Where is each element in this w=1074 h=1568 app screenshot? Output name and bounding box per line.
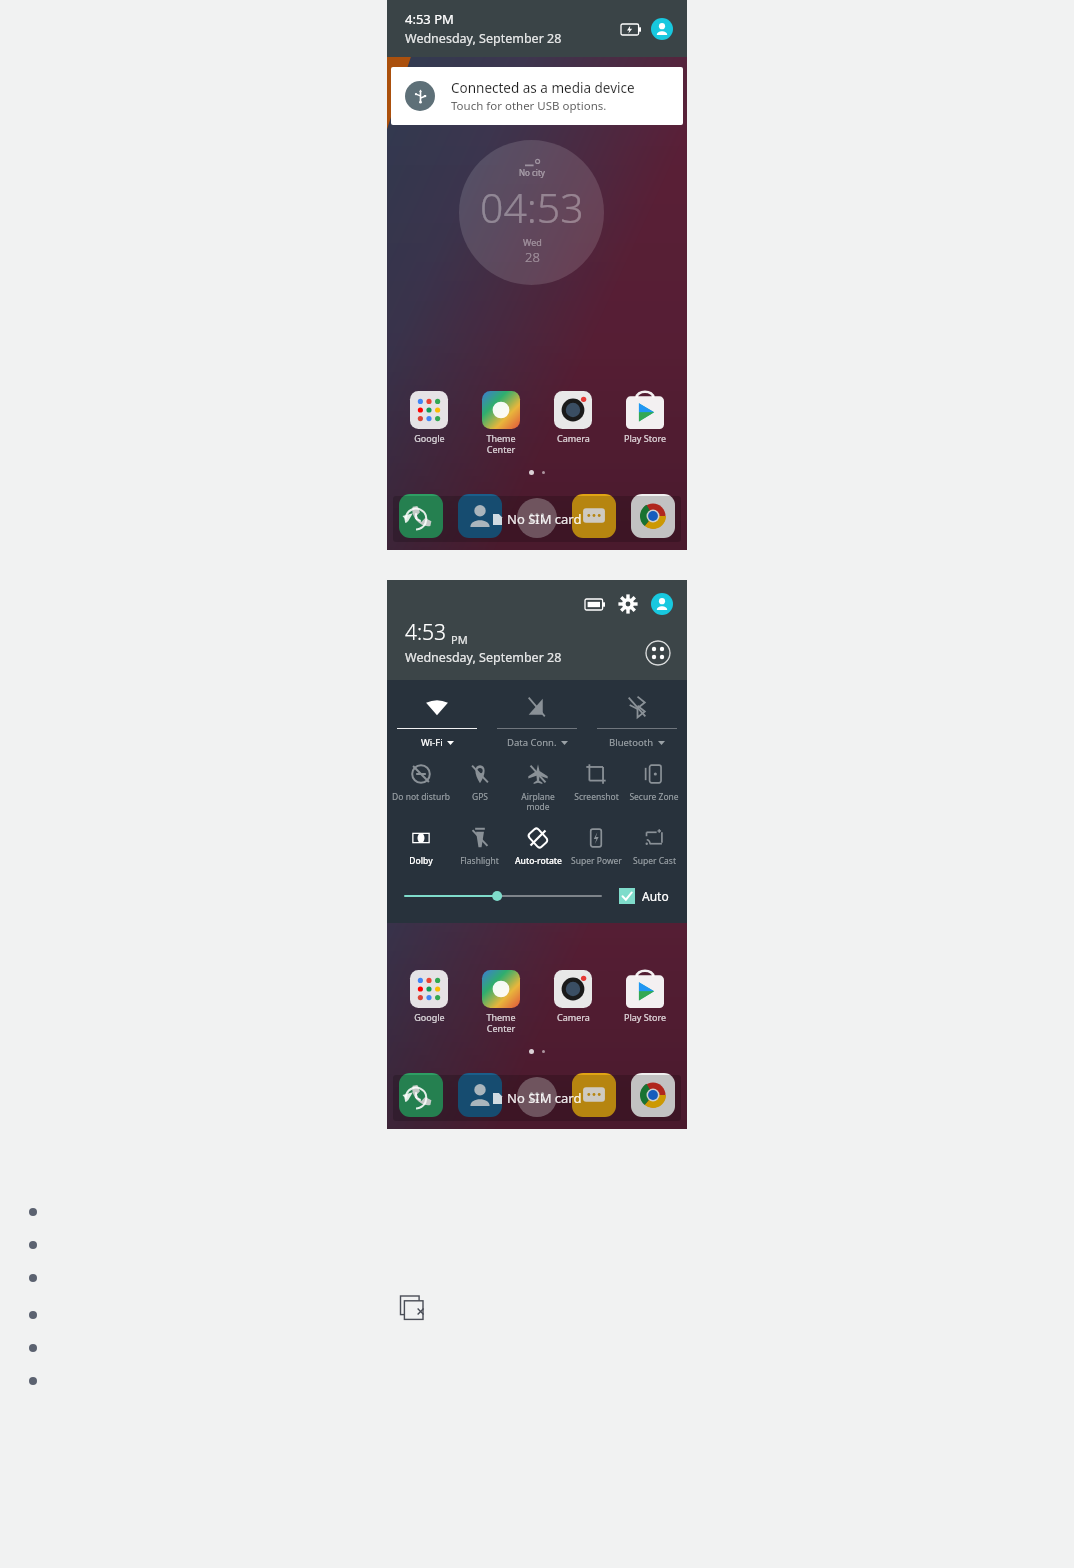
button[interactable]: Brightness <box>405 886 601 906</box>
button[interactable]: All apps <box>517 498 557 538</box>
staticText: No SIM card <box>507 510 582 528</box>
button[interactable]: Contacts <box>458 494 502 538</box>
button[interactable]: Camera <box>547 970 599 1023</box>
staticText: 4:53 PM <box>405 10 454 28</box>
button[interactable]: Phone <box>399 1073 443 1117</box>
button[interactable]: Camera <box>547 391 599 444</box>
staticText: 28 <box>525 248 540 266</box>
button[interactable]: Edit tiles <box>645 640 671 666</box>
staticText: Auto-rotate <box>515 855 562 867</box>
button[interactable]: Chrome <box>631 1073 675 1117</box>
button[interactable]: Do not disturb <box>391 763 450 803</box>
staticText: Play Store <box>624 432 666 444</box>
button[interactable]: Auto <box>619 888 669 904</box>
button[interactable]: Secure Zone <box>625 763 683 803</box>
staticText: Wednesday, September 28 <box>405 30 562 47</box>
staticText: Bluetooth <box>609 736 654 749</box>
staticText: Connected as a media device <box>451 79 635 97</box>
staticText: Auto <box>642 888 669 904</box>
button[interactable]: Screenshot <box>567 763 625 803</box>
button[interactable]: User profile <box>651 18 673 40</box>
staticText: Google <box>414 1011 445 1023</box>
button[interactable]: Contacts <box>458 1073 502 1117</box>
button[interactable]: No SIM card <box>393 1075 681 1121</box>
button[interactable]: Play Store <box>619 391 671 444</box>
staticText: Super Cast <box>633 855 676 867</box>
staticText: PM <box>451 632 468 647</box>
button[interactable]: Chrome <box>631 494 675 538</box>
staticText: Secure Zone <box>629 791 679 803</box>
button[interactable]: Dolby <box>391 827 450 867</box>
button[interactable]: All apps <box>517 1077 557 1117</box>
staticText: Do not disturb <box>392 791 450 803</box>
button[interactable]: Flashlight <box>450 827 509 867</box>
staticText: Data Conn. <box>507 736 557 749</box>
staticText: Wed <box>523 236 542 248</box>
staticText: Touch for other USB options. <box>451 98 607 114</box>
staticText: Wi-Fi <box>421 736 443 749</box>
staticText: Theme Center <box>475 1011 527 1034</box>
button[interactable]: Data Conn. <box>487 694 587 749</box>
staticText: Camera <box>557 1011 590 1023</box>
staticText: Airplane mode <box>509 791 567 813</box>
button[interactable]: Theme Center <box>475 970 527 1034</box>
staticText: Screenshot <box>574 791 619 803</box>
button[interactable]: Auto-rotate <box>509 827 567 867</box>
staticText: Theme Center <box>475 432 527 455</box>
staticText: Dolby <box>409 855 433 867</box>
button[interactable]: Phone <box>399 494 443 538</box>
button[interactable]: No SIM card <box>393 496 681 542</box>
button[interactable]: Google <box>403 970 455 1023</box>
staticText: GPS <box>472 791 488 803</box>
button[interactable]: Settings <box>618 594 638 614</box>
button[interactable]: Bluetooth <box>587 694 687 749</box>
button[interactable]: User profile <box>651 593 673 615</box>
staticText: Wednesday, September 28 <box>405 649 562 666</box>
button[interactable]: Messaging <box>572 494 616 538</box>
button[interactable]: Messaging <box>572 1073 616 1117</box>
button[interactable]: Super Power <box>567 827 625 867</box>
staticText: No city <box>519 167 545 178</box>
button[interactable]: Theme Center <box>475 391 527 455</box>
button[interactable]: Super Cast <box>625 827 683 867</box>
staticText: Camera <box>557 432 590 444</box>
staticText: No SIM card <box>507 1089 582 1107</box>
staticText: Super Power <box>571 855 622 867</box>
button[interactable]: Wi-Fi <box>387 694 487 749</box>
button[interactable]: Google <box>403 391 455 444</box>
button[interactable]: GPS <box>450 763 509 803</box>
staticText: Play Store <box>624 1011 666 1023</box>
staticText: Flashlight <box>460 855 499 867</box>
other: Missing image <box>399 1293 429 1323</box>
button[interactable]: Airplane mode <box>509 763 567 813</box>
button[interactable]: Play Store <box>619 970 671 1023</box>
staticText: 04:53 <box>480 179 584 235</box>
staticText: 4:53 <box>405 618 447 647</box>
staticText: Google <box>414 432 445 444</box>
button[interactable]: Connected as a media device <box>391 67 683 125</box>
